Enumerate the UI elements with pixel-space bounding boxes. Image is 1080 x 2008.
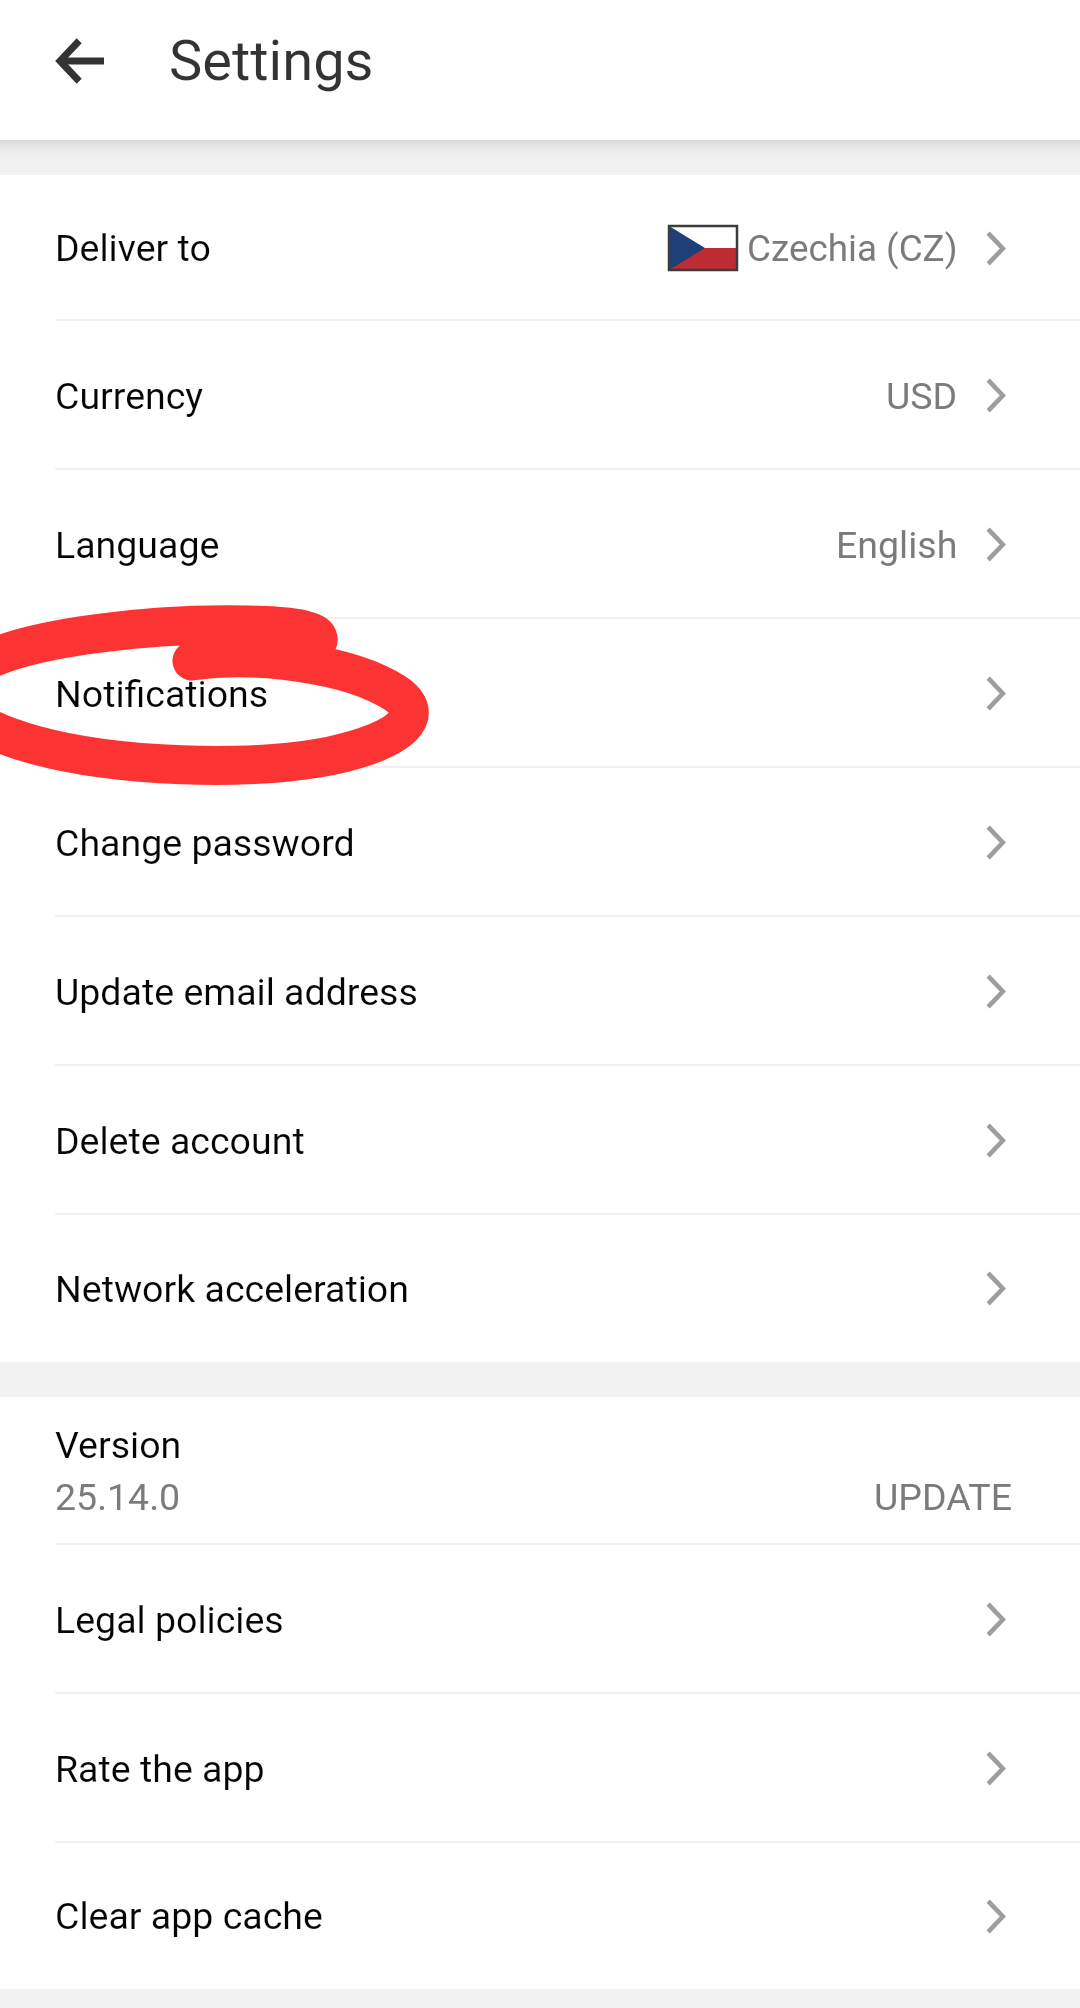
button[interactable]: Deliver to <box>0 175 1080 321</box>
button[interactable]: Change password <box>0 768 1080 917</box>
button[interactable]: Clear app cache <box>0 1843 1080 1989</box>
staticText: Language <box>55 523 220 567</box>
staticText: Currency <box>55 374 204 418</box>
staticText: English <box>836 523 958 567</box>
staticText: Clear app cache <box>55 1894 323 1938</box>
button[interactable]: Currency <box>0 321 1080 470</box>
staticText: Version <box>55 1423 182 1467</box>
staticText: Notifications <box>55 672 269 716</box>
staticText: Change password <box>55 821 355 865</box>
button[interactable]: Language <box>0 470 1080 619</box>
button[interactable]: Update email address <box>0 917 1080 1066</box>
button[interactable]: Delete account <box>0 1066 1080 1215</box>
staticText: Rate the app <box>55 1747 265 1791</box>
button[interactable]: Notifications <box>0 619 1080 768</box>
staticText: Network acceleration <box>55 1267 409 1311</box>
button[interactable]: Rate the app <box>0 1694 1080 1843</box>
staticText: Deliver to <box>55 226 211 270</box>
staticText: Czechia (CZ) <box>747 227 958 270</box>
staticText: Settings <box>169 28 374 94</box>
staticText: 25.14.0 <box>55 1475 181 1519</box>
button[interactable]: Navigate back <box>40 20 122 102</box>
staticText: Legal policies <box>55 1598 284 1642</box>
staticText: Delete account <box>55 1119 305 1163</box>
staticText: UPDATE <box>874 1475 1012 1519</box>
staticText: USD <box>886 374 958 418</box>
button[interactable]: UPDATE <box>874 1475 1012 1519</box>
staticText: Update email address <box>55 970 418 1014</box>
button[interactable]: Version <box>0 1397 1080 1545</box>
button[interactable]: Legal policies <box>0 1545 1080 1694</box>
button[interactable]: Network acceleration <box>0 1215 1080 1362</box>
